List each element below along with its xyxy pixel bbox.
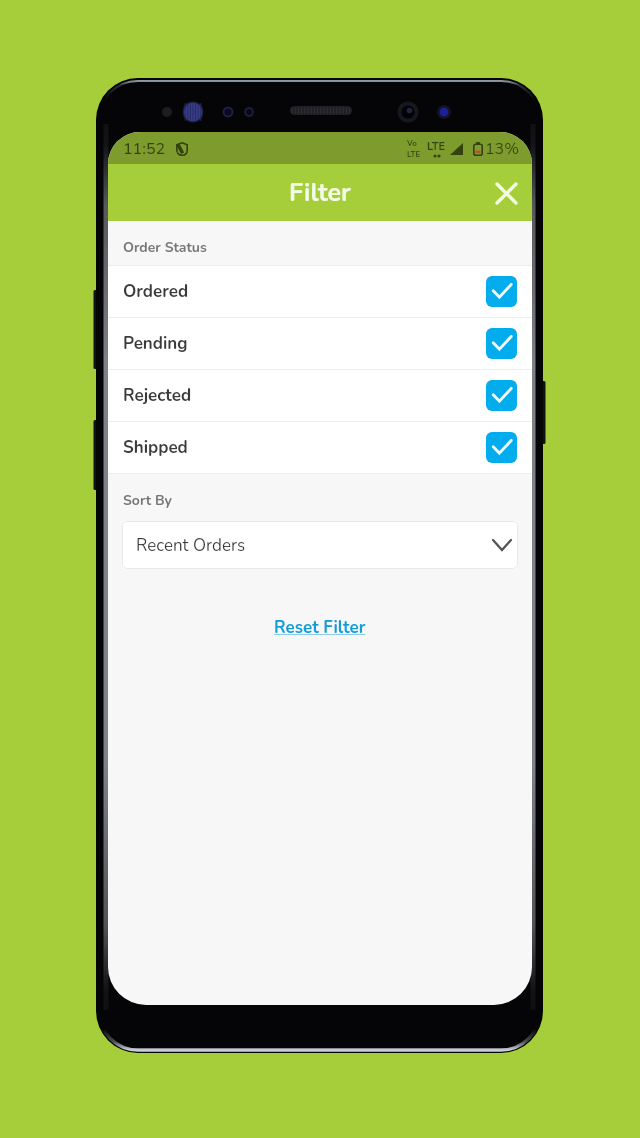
staticText: Sort By (123, 491, 172, 510)
staticText: Pending (123, 332, 188, 355)
button[interactable]: Shipped (108, 422, 532, 473)
staticText: Ordered (123, 280, 189, 303)
staticText: Order Status (123, 238, 207, 257)
button[interactable]: Rejected (108, 370, 532, 421)
staticText: LTE (427, 139, 446, 154)
button[interactable]: Recent Orders (122, 521, 518, 569)
staticText: Vo (407, 138, 417, 149)
staticText: Rejected (123, 384, 192, 407)
button[interactable]: Pending (108, 318, 532, 369)
staticText: 11:52 (123, 138, 166, 160)
button[interactable]: Reset Filter (262, 611, 378, 644)
staticText: 13% (485, 138, 520, 160)
button[interactable]: Close (482, 169, 530, 217)
button[interactable]: Ordered (108, 266, 532, 317)
staticText: Filter (289, 176, 351, 210)
staticText: Reset Filter (274, 616, 366, 639)
staticText: Recent Orders (136, 534, 246, 557)
staticText: LTE (407, 149, 421, 160)
staticText: Shipped (123, 436, 188, 459)
